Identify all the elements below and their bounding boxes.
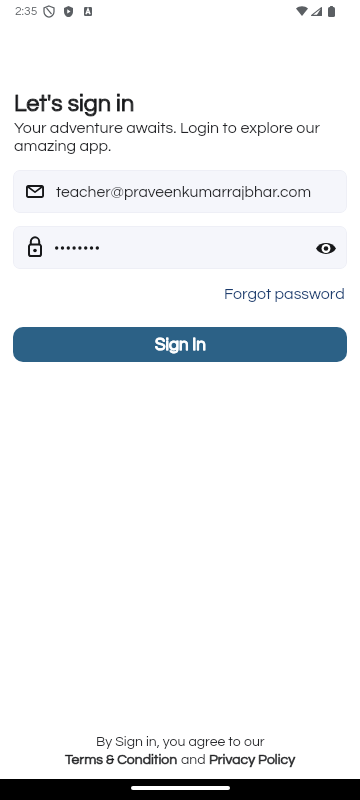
staticText: Sign In bbox=[155, 336, 206, 354]
staticText: Sign In bbox=[155, 336, 206, 354]
button[interactable]: Terms & Condition bbox=[65, 753, 178, 767]
button[interactable]: Show password bbox=[13, 226, 347, 269]
staticText: Let's sign in bbox=[14, 92, 135, 116]
staticText: Terms & Condition bbox=[65, 753, 178, 767]
button[interactable]: Privacy Policy bbox=[209, 753, 296, 767]
staticText: Let's sign in bbox=[14, 92, 135, 116]
button[interactable]: teacher@praveenkumarrajbhar.com bbox=[13, 170, 347, 213]
staticText: Forgot password bbox=[224, 286, 345, 302]
button[interactable]: Forgot password bbox=[223, 286, 346, 302]
staticText: teacher@praveenkumarrajbhar.com bbox=[56, 184, 312, 200]
staticText: By Sign in, you agree to our bbox=[96, 735, 265, 749]
staticText: Terms & Condition bbox=[65, 753, 178, 767]
button[interactable]: Show password bbox=[311, 233, 341, 263]
staticText: Privacy Policy bbox=[209, 753, 296, 767]
staticText: and bbox=[178, 753, 209, 767]
button[interactable]: Sign In bbox=[13, 327, 347, 362]
staticText: 2:35 bbox=[15, 5, 38, 17]
staticText: Your adventure awaits. Login to explore … bbox=[14, 120, 320, 154]
staticText: Privacy Policy bbox=[209, 753, 296, 767]
